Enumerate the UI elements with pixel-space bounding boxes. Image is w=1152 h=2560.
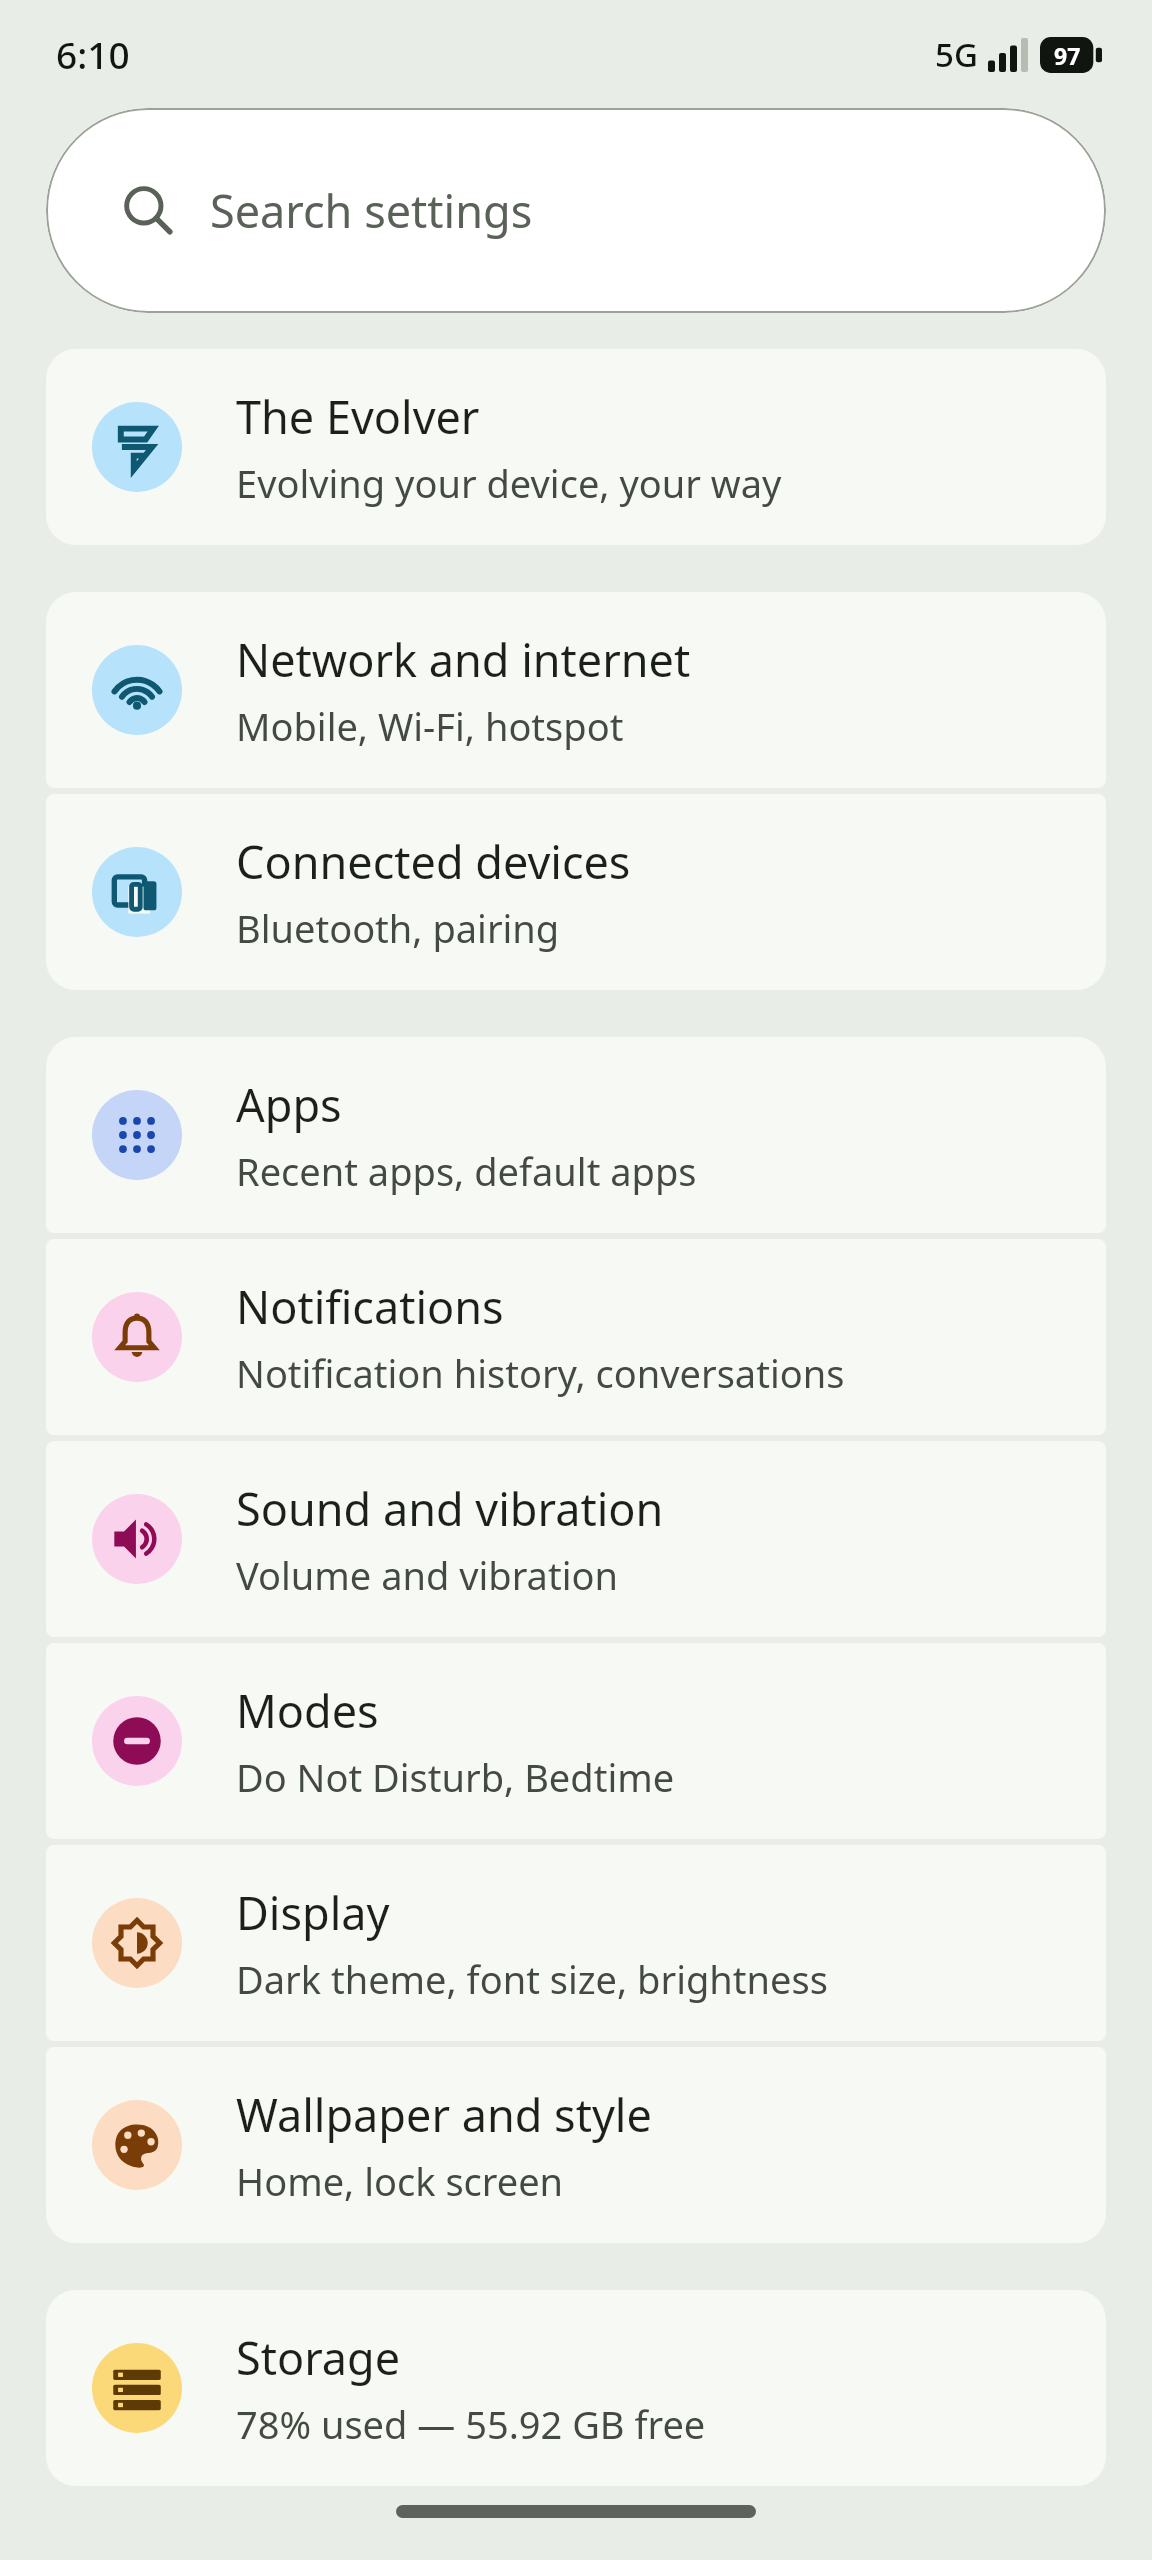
staticText: Evolving your device, your way (236, 457, 782, 509)
staticText: 78% used — 55.92 GB free (236, 2398, 706, 2450)
staticText: Bluetooth, pairing (236, 902, 560, 954)
button[interactable]: Search settings (46, 108, 1106, 313)
staticText: Search settings (210, 180, 533, 241)
staticText: Dark theme, font size, brightness (236, 1953, 828, 2005)
button[interactable]: Wallpaper and style (46, 2047, 1106, 2243)
staticText: Notification history, conversations (236, 1347, 845, 1399)
staticText: Connected devices (236, 831, 631, 892)
button[interactable]: Notifications (46, 1239, 1106, 1435)
staticText: Recent apps, default apps (236, 1145, 697, 1197)
staticText: Apps (236, 1074, 342, 1135)
button[interactable]: Modes (46, 1643, 1106, 1839)
staticText: Mobile, Wi-Fi, hotspot (236, 700, 624, 752)
button[interactable]: Sound and vibration (46, 1441, 1106, 1637)
staticText: Modes (236, 1680, 379, 1741)
staticText: 5G (935, 32, 978, 77)
button[interactable]: Storage (46, 2290, 1106, 2486)
button[interactable]: Connected devices (46, 794, 1106, 990)
staticText: Display (236, 1882, 390, 1943)
staticText: Do Not Disturb, Bedtime (236, 1751, 675, 1803)
staticText: 97 (1054, 40, 1081, 71)
staticText: Sound and vibration (236, 1478, 664, 1539)
staticText: The Evolver (236, 386, 480, 447)
button[interactable]: Apps (46, 1037, 1106, 1233)
staticText: Home, lock screen (236, 2155, 564, 2207)
staticText: Storage (236, 2327, 401, 2388)
button[interactable]: The Evolver (46, 349, 1106, 545)
staticText: Volume and vibration (236, 1549, 618, 1601)
button[interactable]: Display (46, 1845, 1106, 2041)
staticText: 6:10 (56, 29, 130, 79)
staticText: Network and internet (236, 629, 691, 690)
staticText: Notifications (236, 1276, 504, 1337)
staticText: Wallpaper and style (236, 2084, 652, 2145)
button[interactable]: Network and internet (46, 592, 1106, 788)
